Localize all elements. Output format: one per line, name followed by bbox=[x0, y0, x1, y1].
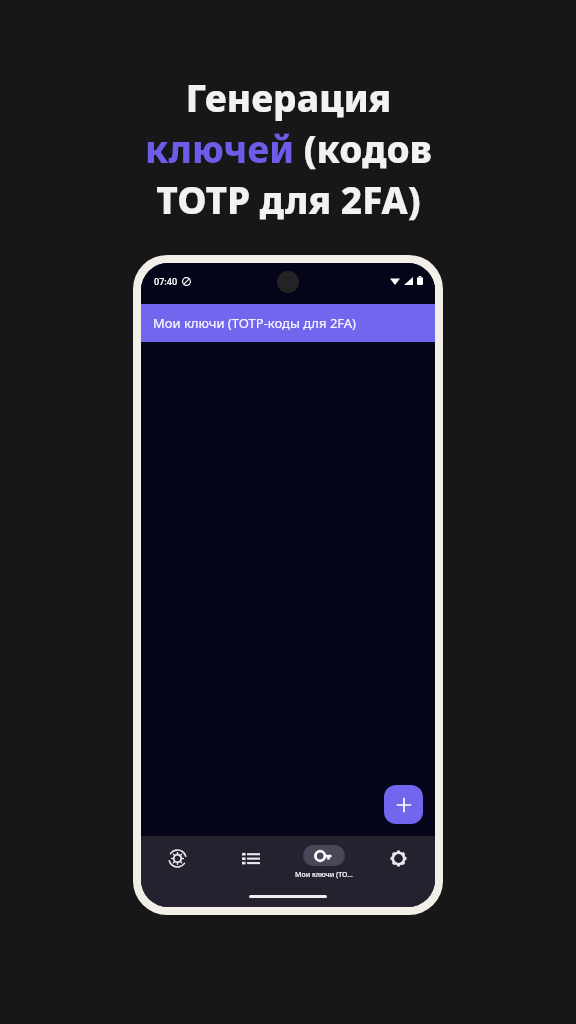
button[interactable]: Мои ключи (TOTP-коды для 2FA) bbox=[141, 304, 435, 342]
button[interactable]: Генератор bbox=[141, 836, 214, 889]
button[interactable]: Мои ключи (ТО… bbox=[287, 836, 361, 889]
staticText: 07:40 bbox=[154, 275, 178, 287]
button[interactable]: Список bbox=[214, 836, 287, 889]
staticText: Генерация ключей (кодов TOTP для 2FA) bbox=[145, 72, 432, 225]
staticText: Мои ключи (TOTP-коды для 2FA) bbox=[153, 314, 357, 332]
staticText: Мои ключи (ТО… bbox=[295, 870, 353, 880]
button[interactable]: Настройки bbox=[361, 836, 435, 889]
button[interactable]: Добавить ключ bbox=[384, 785, 423, 824]
